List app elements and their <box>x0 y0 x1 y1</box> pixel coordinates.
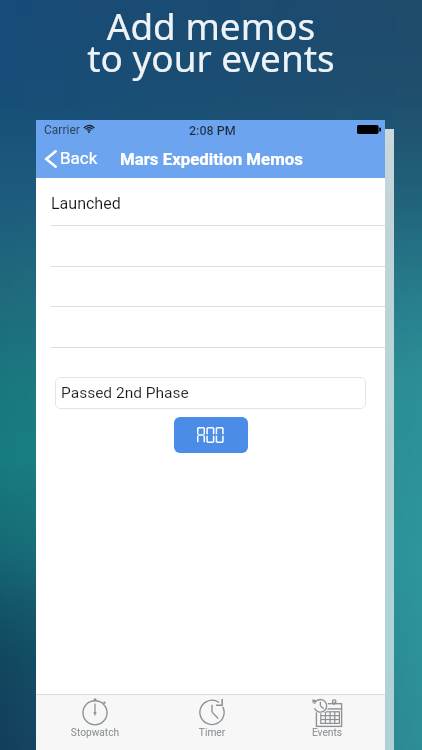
staticText: Back <box>60 148 98 168</box>
button[interactable]: Passed 2nd Phase <box>55 377 366 409</box>
button[interactable]: Stopwatch <box>36 694 152 750</box>
staticText: Timer <box>182 727 242 739</box>
button[interactable]: Back <box>40 142 108 176</box>
staticText: Mars Expedition Memos <box>120 149 303 169</box>
staticText: Launched <box>51 194 121 213</box>
button[interactable]: Events <box>268 694 385 750</box>
staticText: Carrier <box>44 123 80 137</box>
staticText: Passed 2nd Phase <box>61 384 189 402</box>
button[interactable]: Add <box>174 417 248 453</box>
staticText: to your events <box>0 33 422 83</box>
staticText: Events <box>297 727 357 739</box>
staticText: 2:08 PM <box>189 123 236 138</box>
staticText: Add memos <box>0 1 422 51</box>
staticText: Stopwatch <box>65 727 125 739</box>
button[interactable]: Timer <box>152 694 268 750</box>
